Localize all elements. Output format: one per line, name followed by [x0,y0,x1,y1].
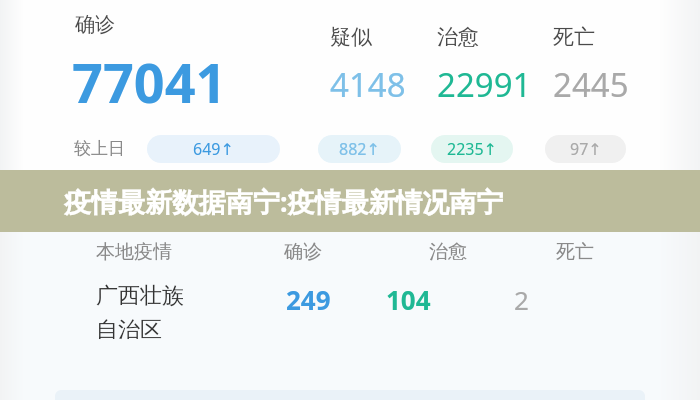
button[interactable]: 649↑ [147,135,280,163]
button[interactable]: 2235↑ [431,135,513,163]
staticText: 97↑ [570,138,602,160]
staticText: 649↑ [193,138,234,160]
button[interactable]: 死亡 [553,24,663,107]
staticText: 2445 [553,62,629,107]
staticText: 4148 [330,62,406,107]
staticText: 104 [386,282,431,317]
staticText: 2 [514,282,529,317]
staticText: 2235↑ [447,138,498,160]
staticText: 疑似 [330,24,372,50]
staticText: 882↑ [339,138,380,160]
staticText: 死亡 [556,240,594,264]
staticText: 确诊 [284,240,322,264]
staticText: 治愈 [437,24,479,50]
staticText: 治愈 [429,240,467,264]
staticText: 249 [286,282,331,317]
staticText: 确诊 [75,12,115,37]
staticText: 广西壮族 [96,282,184,310]
staticText: 77041 [72,45,227,119]
staticText: 22991 [437,62,532,107]
staticText: 死亡 [553,24,595,50]
staticText: 自治区 [96,316,162,344]
staticText: 本地疫情 [96,240,172,264]
staticText: 疫情最新数据南宁:疫情最新情况南宁 [64,183,504,220]
staticText: 较上日 [74,138,125,159]
button[interactable]: 882↑ [318,135,401,163]
button[interactable]: 97↑ [545,135,626,163]
button[interactable]: 治愈 [437,24,547,107]
button[interactable]: 广西壮族 [0,282,700,362]
button[interactable]: 疑似 [330,24,440,107]
